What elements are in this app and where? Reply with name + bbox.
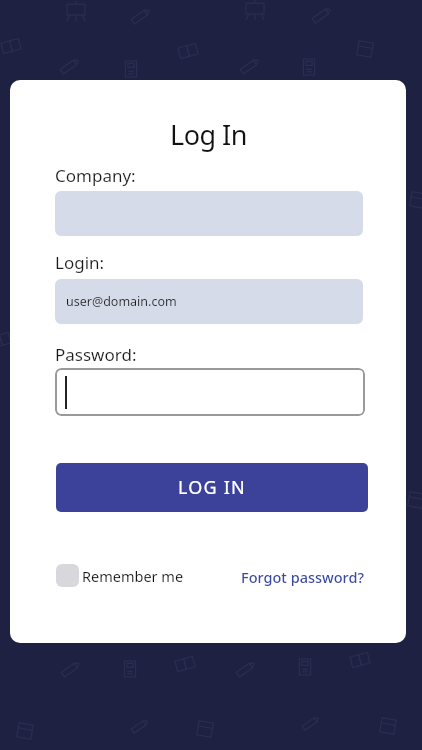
button[interactable]: Forgot password? [241,567,364,587]
button[interactable]: user@domain.com [55,279,363,324]
staticText: Login: [55,251,105,274]
button[interactable]: Remember me [56,564,184,587]
staticText: user@domain.com [66,293,177,310]
staticText: Company: [55,164,136,187]
button[interactable]: LOG IN [56,463,368,512]
staticText: Log In [170,116,247,153]
staticText: Remember me [82,566,184,586]
staticText: Password: [55,343,137,366]
staticText: LOG IN [178,475,246,500]
button[interactable] [55,368,365,416]
